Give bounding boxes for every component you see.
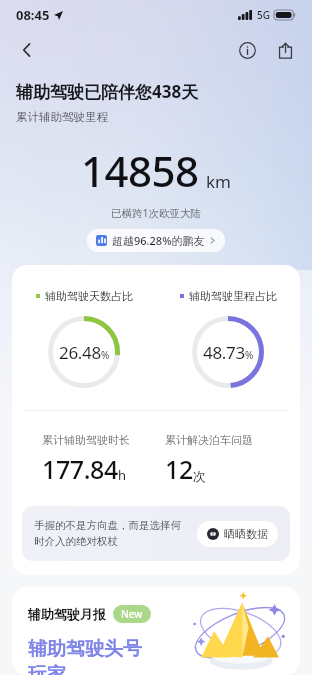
staticText: % <box>101 348 110 362</box>
staticText: 超越96.28%的鹏友 <box>112 233 205 248</box>
staticText: 辅助驾驶里程占比 <box>189 289 277 303</box>
staticText: 48.73 <box>203 341 245 364</box>
staticText: km <box>206 170 231 193</box>
button[interactable]: 辅助驾驶月报 <box>12 587 300 675</box>
staticText: 辅助驾驶已陪伴您438天 <box>16 80 199 103</box>
staticText: h <box>118 466 127 484</box>
staticText: 手握的不是方向盘，而是选择何 时介入的绝对权杖 <box>34 519 191 548</box>
staticText: 已横跨1次欧亚大陆 <box>111 206 202 220</box>
button[interactable]: Back <box>10 33 44 67</box>
staticText: 辅助驾驶头号 玩家 <box>28 637 142 675</box>
staticText: 14858 <box>81 142 199 199</box>
staticText: 26.48 <box>59 341 101 364</box>
staticText: 累计辅助驾驶里程 <box>16 110 108 124</box>
button[interactable]: Info <box>230 33 264 67</box>
staticText: 累计辅助驾驶时长 <box>42 433 130 447</box>
staticText: 累计解决泊车问题 <box>165 433 253 447</box>
staticText: New <box>121 607 143 621</box>
button[interactable]: 超越96.28%的鹏友 <box>87 229 225 252</box>
staticText: 辅助驾驶月报 <box>28 606 106 622</box>
button[interactable]: 晒晒数据 <box>197 521 278 547</box>
staticText: 5G <box>257 8 270 22</box>
staticText: 辅助驾驶天数占比 <box>45 289 133 303</box>
staticText: % <box>245 348 254 362</box>
staticText: 177.84 <box>42 452 118 486</box>
staticText: 08:45 <box>16 6 50 24</box>
button[interactable]: Share <box>268 33 302 67</box>
staticText: 次 <box>193 468 206 484</box>
staticText: 晒晒数据 <box>224 527 268 541</box>
staticText: 12 <box>165 452 193 486</box>
